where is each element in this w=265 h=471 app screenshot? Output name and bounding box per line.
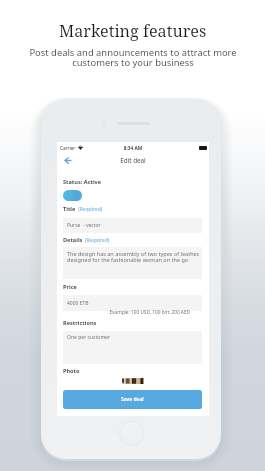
staticText: (Required)	[78, 206, 103, 213]
staticText: Post deals and announcements to attract …	[29, 46, 237, 69]
button[interactable]: Save deal	[63, 390, 202, 409]
button[interactable]: Back	[59, 153, 75, 167]
staticText: Details	[63, 236, 83, 244]
staticText: Title	[63, 205, 76, 213]
staticText: Example: 100 USD, 100 birr, 200 AED	[57, 309, 190, 315]
button[interactable]: Status toggle	[63, 190, 82, 201]
staticText: Photo	[63, 367, 80, 375]
staticText: 4000 ETB	[67, 300, 89, 307]
staticText: 8:34 AM	[57, 145, 209, 152]
staticText: Marketing features	[59, 20, 207, 42]
staticText: Status: Active	[63, 178, 102, 186]
staticText: (Required)	[85, 237, 110, 244]
staticText: Price	[63, 283, 77, 291]
staticText: Save deal	[121, 396, 144, 403]
staticText: Purse - vector	[67, 222, 101, 229]
staticText: Carrier	[60, 145, 76, 151]
staticText: Edit deal	[57, 156, 209, 165]
staticText: The design has an assembly of two types …	[67, 250, 200, 264]
staticText: One per customer	[67, 334, 111, 341]
staticText: Restrictions	[63, 319, 97, 327]
